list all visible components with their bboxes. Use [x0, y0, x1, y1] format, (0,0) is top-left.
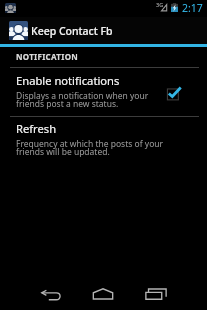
button[interactable]: Enable notifications — [0, 73, 207, 114]
button[interactable]: Recent apps — [132, 276, 180, 310]
button[interactable]: Enable notifications checkbox — [167, 87, 181, 101]
staticText: 2:17 — [182, 1, 203, 15]
staticText: 3G — [156, 1, 164, 8]
staticText: Displays a notification when your — [16, 90, 149, 102]
button[interactable]: Back — [27, 276, 75, 310]
staticText: Keep Contact Fb — [31, 24, 113, 38]
button[interactable]: Refresh — [0, 121, 207, 162]
staticText: Refresh — [16, 121, 57, 136]
staticText: Frequency at which the posts of your — [16, 138, 164, 150]
staticText: NOTIFICATION — [16, 51, 79, 62]
button[interactable]: Home — [79, 276, 127, 310]
staticText: friends will be updated. — [16, 146, 110, 158]
staticText: friends post a new status. — [16, 98, 119, 110]
staticText: Enable notifications — [16, 73, 120, 88]
